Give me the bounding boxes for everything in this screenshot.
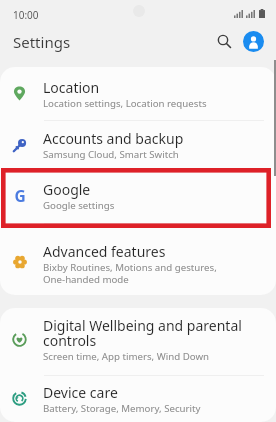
button[interactable]: Digital Wellbeing and parental controls [0,308,276,375]
staticText: Accounts and backup [43,129,184,148]
staticText: Samsung Cloud, Smart Switch [43,148,179,161]
button[interactable]: Search [211,28,237,54]
button[interactable]: Device care [0,376,276,422]
staticText: Bixby Routines, Motions and gestures, On… [43,261,217,285]
staticText: Advanced features [43,242,166,261]
staticText: Location settings, Location requests [43,97,207,110]
staticText: Digital Wellbeing and parental controls [43,316,242,350]
button[interactable]: Location [0,67,276,120]
staticText: Google settings [43,199,115,212]
staticText: G [14,185,26,204]
staticText: Google [43,180,91,199]
button[interactable]: G [0,172,276,223]
button[interactable]: Accounts and backup [0,121,276,171]
staticText: Settings [13,32,71,52]
staticText: Location [43,78,100,97]
staticText: 10:00 [13,8,39,22]
button[interactable]: Advanced features [0,224,276,295]
staticText: Battery, Storage, Memory, Security [43,402,201,415]
staticText: Screen time, App timers, Wind Down [43,350,210,363]
button[interactable]: Account [243,31,264,52]
staticText: Device care [43,383,118,402]
